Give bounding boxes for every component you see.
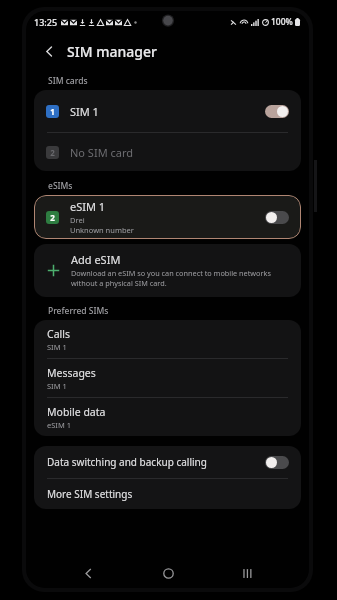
- button[interactable]: Mobile data: [34, 398, 301, 436]
- button[interactable]: Home: [151, 558, 185, 588]
- staticText: 100%: [271, 16, 293, 28]
- staticText: SIM 1: [70, 104, 99, 119]
- staticText: SIM cards: [48, 75, 88, 87]
- staticText: Unknown number: [70, 225, 134, 235]
- button[interactable]: Toggle off: [265, 211, 289, 224]
- staticText: eSIM 1: [70, 199, 106, 214]
- staticText: 13:25: [34, 16, 58, 28]
- staticText: Mobile data: [47, 405, 106, 419]
- button[interactable]: Toggle on: [265, 105, 289, 118]
- button[interactable]: Recents: [230, 558, 264, 588]
- button[interactable]: Calls: [34, 320, 301, 358]
- staticText: No SIM card: [70, 145, 134, 160]
- staticText: 2: [50, 147, 55, 158]
- staticText: More SIM settings: [47, 487, 133, 501]
- button[interactable]: 2: [34, 133, 301, 171]
- staticText: eSIMs: [48, 180, 73, 192]
- staticText: SIM 1: [47, 381, 67, 391]
- staticText: Preferred SIMs: [48, 305, 109, 317]
- staticText: SIM 1: [47, 342, 67, 352]
- button[interactable]: More SIM settings: [34, 479, 301, 509]
- button[interactable]: Messages: [34, 359, 301, 397]
- button[interactable]: Add eSIM: [34, 244, 301, 297]
- staticText: 1: [50, 106, 55, 117]
- staticText: eSIM 1: [47, 420, 71, 430]
- staticText: Messages: [47, 366, 96, 380]
- staticText: SIM manager: [67, 42, 157, 61]
- button[interactable]: Back: [36, 38, 62, 64]
- button[interactable]: Back: [71, 558, 105, 588]
- staticText: Calls: [47, 327, 70, 341]
- staticText: Drei: [70, 215, 85, 225]
- button[interactable]: 1: [34, 90, 301, 132]
- button[interactable]: Toggle off: [265, 456, 289, 469]
- button[interactable]: 2: [34, 195, 301, 239]
- staticText: Add eSIM: [71, 252, 121, 267]
- staticText: 2: [50, 212, 55, 223]
- button[interactable]: Data switching and backup calling: [34, 446, 301, 478]
- staticText: Data switching and backup calling: [47, 455, 265, 469]
- staticText: Download an eSIM so you can connect to m…: [71, 268, 287, 288]
